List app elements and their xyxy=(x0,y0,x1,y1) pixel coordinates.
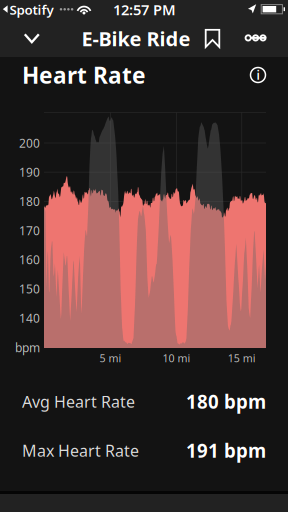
staticText: i xyxy=(256,67,259,83)
button[interactable]: Info xyxy=(246,63,270,87)
staticText: 10 mi xyxy=(162,351,190,365)
staticText: Avg Heart Rate xyxy=(22,391,135,412)
staticText: 191 bpm xyxy=(186,438,266,463)
staticText: 180 xyxy=(19,193,40,209)
staticText: E-Bike Ride xyxy=(81,25,190,52)
staticText: 5 mi xyxy=(99,351,121,365)
staticText: 160 xyxy=(19,252,40,268)
staticText: 180 bpm xyxy=(186,389,266,414)
button[interactable]: Avg Heart Rate xyxy=(0,377,288,426)
staticText: 190 xyxy=(19,164,40,180)
button[interactable]: Max Heart Rate xyxy=(0,426,288,475)
button[interactable]: More options xyxy=(0,20,288,57)
staticText: Spotify xyxy=(9,1,53,18)
button[interactable]: Collapse xyxy=(0,20,288,57)
staticText: bpm xyxy=(15,339,40,355)
staticText: 200 xyxy=(19,135,40,151)
staticText: 140 xyxy=(19,310,40,326)
button[interactable]: Bookmark xyxy=(0,20,288,57)
staticText: Max Heart Rate xyxy=(22,440,139,461)
staticText: 150 xyxy=(19,281,40,297)
staticText: 170 xyxy=(19,222,40,238)
staticText: 12:57 PM xyxy=(113,0,176,19)
staticText: Heart Rate xyxy=(22,60,146,90)
staticText: 15 mi xyxy=(228,351,256,365)
